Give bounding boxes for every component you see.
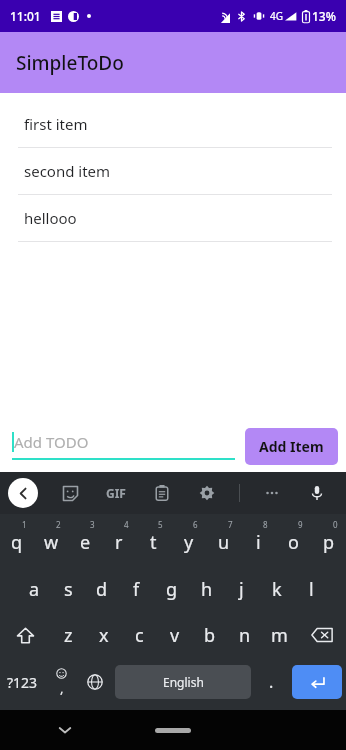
staticText: . [269, 671, 274, 693]
staticText: Add TODO [14, 432, 89, 452]
button[interactable]: Change language [78, 658, 112, 706]
staticText: second item [24, 161, 111, 181]
staticText: 8 [263, 519, 268, 530]
staticText: 6 [193, 519, 198, 530]
button[interactable]: 0 [311, 514, 346, 566]
button[interactable]: m [262, 612, 297, 658]
button[interactable]: Emoji comma [44, 658, 78, 706]
staticText: b [204, 623, 216, 648]
staticText: m [271, 623, 288, 648]
staticText: l [309, 577, 314, 602]
staticText: GIF [106, 485, 126, 501]
button[interactable]: Backspace [297, 612, 346, 658]
button[interactable]: c [122, 612, 157, 658]
button[interactable]: second item [0, 148, 346, 195]
staticText: a [29, 577, 40, 602]
staticText: s [64, 577, 73, 602]
staticText: 9 [298, 519, 303, 530]
staticText: n [239, 623, 251, 648]
staticText: t [150, 530, 157, 555]
staticText: 4G [270, 9, 283, 23]
staticText: English [163, 674, 204, 690]
button[interactable]: n [227, 612, 262, 658]
staticText: p [323, 530, 335, 555]
button[interactable]: v [157, 612, 192, 658]
button[interactable]: Enter [292, 665, 342, 699]
button[interactable]: j [224, 566, 259, 612]
staticText: 2 [56, 519, 61, 530]
button[interactable]: h [189, 566, 224, 612]
staticText: hellooo [24, 208, 77, 228]
staticText: e [80, 530, 91, 555]
button[interactable]: More options [259, 480, 285, 506]
button[interactable]: 2 [34, 514, 68, 566]
staticText: f [133, 577, 140, 602]
staticText: v [170, 623, 180, 648]
staticText: j [239, 577, 244, 602]
staticText: 7 [228, 519, 233, 530]
button[interactable]: l [294, 566, 329, 612]
button[interactable]: 7 [206, 514, 241, 566]
button[interactable]: 4 [102, 514, 136, 566]
button[interactable]: b [192, 612, 227, 658]
staticText: 4 [124, 519, 129, 530]
button[interactable]: Back [8, 478, 38, 508]
staticText: i [256, 530, 261, 555]
button[interactable]: 3 [68, 514, 102, 566]
staticText: Add Item [259, 437, 324, 456]
button[interactable]: Add Item [245, 428, 338, 465]
staticText: , [60, 679, 64, 697]
button[interactable]: 6 [171, 514, 206, 566]
staticText: 1 [22, 519, 27, 530]
staticText: 0 [333, 519, 338, 530]
button[interactable]: f [119, 566, 154, 612]
button[interactable]: Add TODO [12, 432, 235, 460]
button[interactable]: English [115, 665, 251, 699]
staticText: first item [24, 114, 88, 134]
button[interactable]: ?123 [0, 658, 44, 706]
button[interactable]: x [86, 612, 122, 658]
button[interactable]: s [51, 566, 85, 612]
staticText: d [96, 577, 108, 602]
staticText: r [115, 530, 123, 555]
button[interactable]: d [85, 566, 119, 612]
button[interactable]: first item [0, 101, 346, 148]
staticText: u [218, 530, 230, 555]
button[interactable]: a [17, 566, 51, 612]
button[interactable]: Hide keyboard [52, 717, 78, 743]
staticText: o [288, 530, 299, 555]
button[interactable]: z [50, 612, 86, 658]
button[interactable]: 8 [241, 514, 276, 566]
button[interactable]: hellooo [0, 195, 346, 242]
button[interactable]: Voice input [304, 480, 330, 506]
button[interactable]: Settings [194, 480, 220, 506]
staticText: h [201, 577, 213, 602]
button[interactable]: Stickers [57, 480, 83, 506]
staticText: SimpleToDo [16, 50, 124, 76]
button[interactable]: . [254, 658, 288, 706]
staticText: c [135, 623, 144, 648]
button[interactable]: k [259, 566, 294, 612]
staticText: 11:01 [10, 8, 41, 24]
staticText: k [272, 577, 282, 602]
staticText: 3 [90, 519, 95, 530]
staticText: z [64, 623, 73, 648]
button[interactable]: 1 [0, 514, 34, 566]
button[interactable]: Shift [0, 612, 50, 658]
button[interactable]: GIF [102, 481, 130, 505]
staticText: g [166, 577, 178, 602]
button[interactable]: Clipboard [149, 480, 175, 506]
staticText: q [11, 530, 23, 555]
staticText: 5 [158, 519, 163, 530]
staticText: w [44, 530, 59, 555]
button[interactable]: 5 [136, 514, 171, 566]
staticText: x [99, 623, 109, 648]
staticText: y [184, 530, 194, 555]
staticText: ?123 [7, 673, 38, 692]
button[interactable]: g [154, 566, 189, 612]
button[interactable]: 9 [276, 514, 311, 566]
button[interactable]: Home [155, 728, 191, 733]
staticText: 13% [312, 8, 336, 24]
